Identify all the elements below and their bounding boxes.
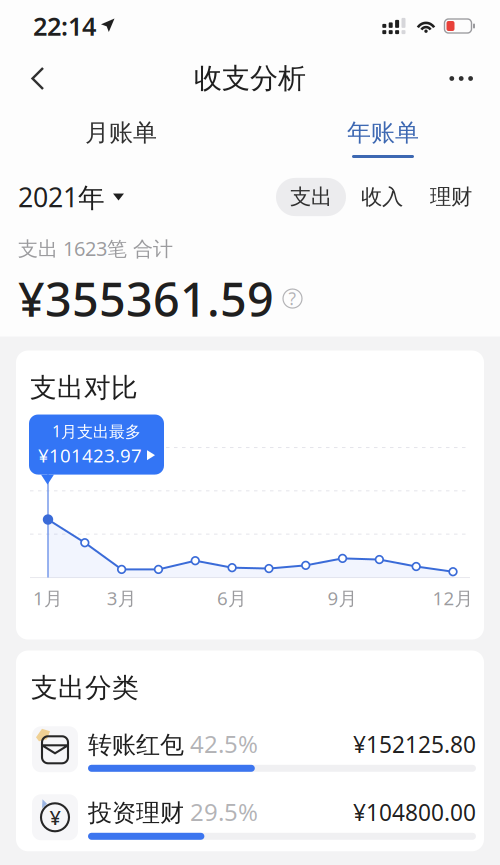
staticText: ? [288,287,296,310]
staticText: 支出对比 [30,371,138,404]
button[interactable]: 月账单 [60,105,182,163]
staticText: 29.5% [184,796,258,828]
staticText: 1月支出最多 [52,420,141,442]
staticText: 12月 [432,585,473,610]
staticText: ¥355361.59 [18,268,274,330]
staticText: ¥ [49,804,60,831]
staticText: 支出分类 [31,671,139,704]
staticText: 月账单 [85,118,157,147]
staticText: 6月 [217,585,247,610]
button[interactable]: 2021年 [18,173,124,221]
staticText: 1月 [33,585,63,610]
staticText: 支出 1623笔 合计 [18,235,173,262]
staticText: 转账红包 [88,730,184,760]
button[interactable]: Help [283,289,302,308]
staticText: 年账单 [347,118,419,147]
button[interactable]: 支出 [276,178,346,216]
staticText: 收入 [361,184,403,210]
button[interactable]: More [436,59,486,98]
staticText: 收支分析 [194,61,306,96]
button[interactable]: Back [14,54,62,103]
staticText: 支出 [290,184,332,210]
staticText: 42.5% [184,728,258,760]
button[interactable]: 收入 [349,178,415,216]
staticText: 22:14 [33,9,96,43]
button[interactable]: 年账单 [322,105,444,163]
button[interactable]: ¥ [16,783,484,851]
staticText: 投资理财 [88,798,184,828]
staticText: ¥104800.00 [353,797,476,827]
staticText: ¥101423.97 [38,443,142,468]
button[interactable]: 理财 [418,178,484,216]
staticText: 3月 [107,585,137,610]
staticText: 理财 [430,184,472,210]
staticText: ¥152125.80 [353,729,476,759]
button[interactable]: 转账红包 [16,715,484,783]
staticText: 9月 [327,585,357,610]
staticText: 2021年 [18,179,105,215]
